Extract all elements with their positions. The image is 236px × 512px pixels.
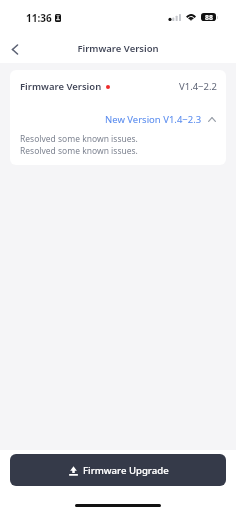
staticText: V1.4−2.2: [179, 80, 217, 93]
button[interactable]: Back: [2, 37, 27, 62]
staticText: Firmware Version: [20, 80, 102, 93]
staticText: 88: [205, 13, 213, 21]
staticText: Resolved some known issues. Resolved som…: [20, 133, 138, 157]
staticText: Firmware Version: [77, 42, 159, 55]
button[interactable]: Firmware Upgrade: [10, 454, 226, 486]
staticText: New Version V1.4−2.3: [105, 113, 202, 126]
staticText: Firmware Upgrade: [83, 464, 169, 477]
button[interactable]: New Version V1.4−2.3: [10, 112, 216, 126]
staticText: 11:36: [26, 11, 52, 25]
